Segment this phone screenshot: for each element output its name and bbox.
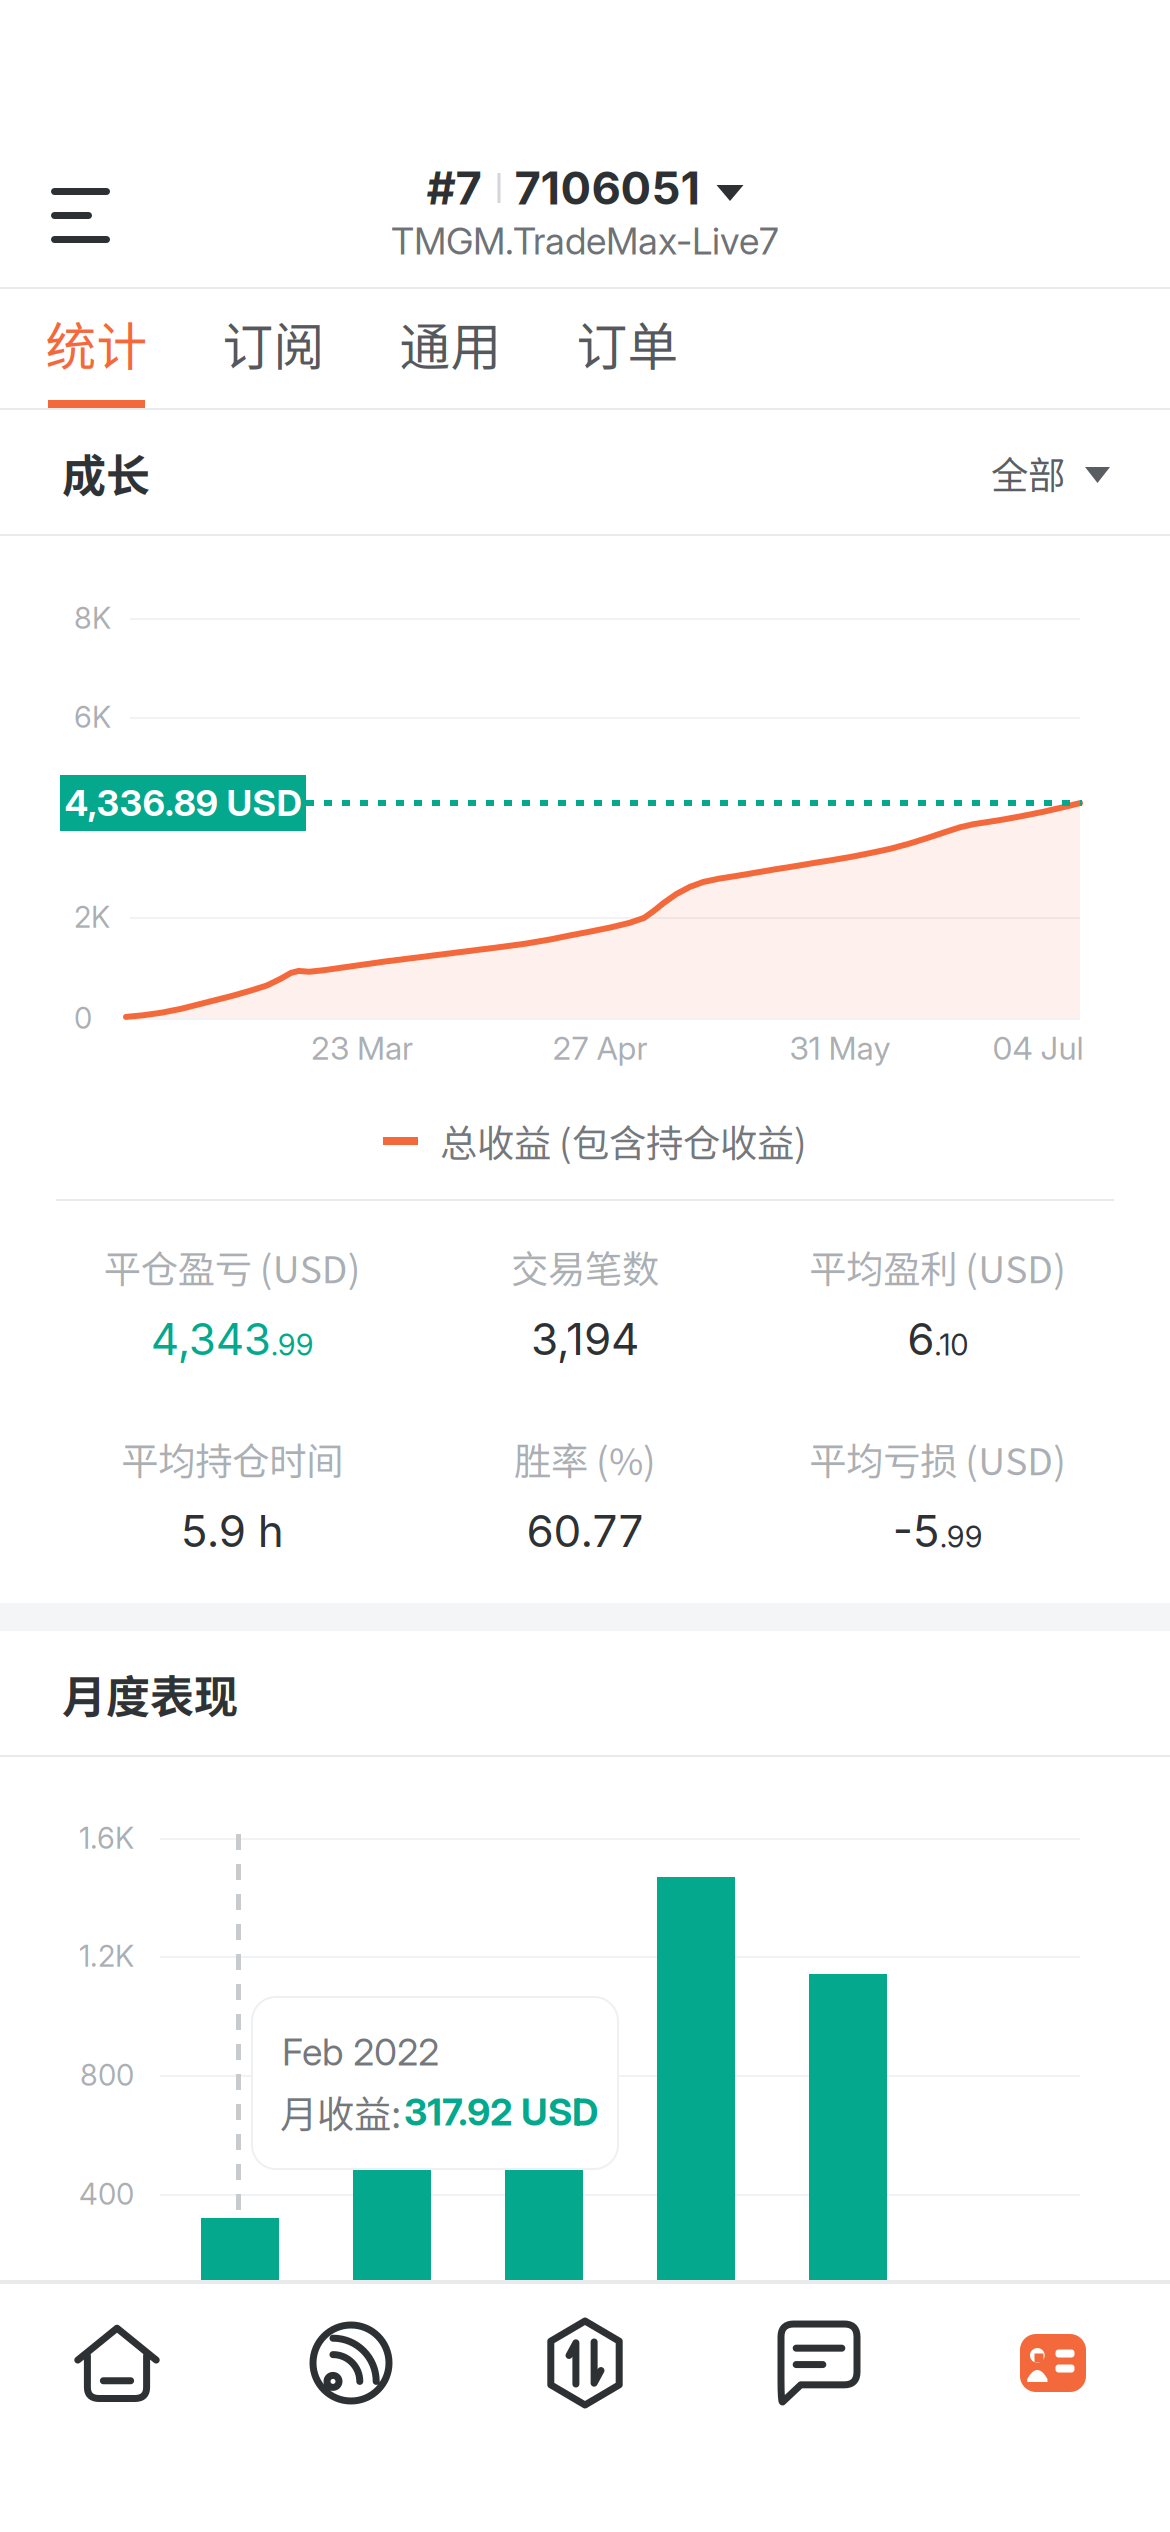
button[interactable]: 通用 xyxy=(362,289,539,410)
staticText: 3,194 xyxy=(531,1312,639,1366)
staticText: 6 xyxy=(907,1312,934,1366)
staticText: 2K xyxy=(74,899,110,935)
staticText: 400 xyxy=(79,2176,134,2212)
staticText: Feb 2022 xyxy=(282,2029,439,2075)
staticText: 4,336.89 USD xyxy=(64,781,301,825)
staticText: 平均盈利 (USD) xyxy=(809,1240,1066,1294)
staticText: 0 xyxy=(74,1000,92,1036)
staticText: 23 Mar xyxy=(311,1029,413,1067)
staticText: 60.77 xyxy=(526,1504,643,1558)
staticText: 胜率 (%) xyxy=(514,1432,656,1486)
staticText: 04 Jul xyxy=(992,1029,1083,1067)
button[interactable]: 统计 xyxy=(8,289,185,410)
staticText: 1.2K xyxy=(79,1938,134,1974)
staticText: TMGM.TradeMax-Live7 xyxy=(391,218,779,264)
staticText: 5.9 h xyxy=(181,1504,284,1558)
staticText: 平均持仓时间 xyxy=(121,1432,343,1486)
button[interactable]: 订阅 xyxy=(185,289,362,410)
staticText: 全部 xyxy=(991,446,1065,500)
staticText: 总收益 (包含持仓收益) xyxy=(440,1114,807,1168)
staticText: 6K xyxy=(74,699,111,735)
staticText: 交易笔数 xyxy=(511,1240,659,1294)
staticText: #7 xyxy=(426,161,481,215)
staticText: 月度表现 xyxy=(62,1662,238,1726)
staticText: .99 xyxy=(940,1519,983,1555)
button[interactable]: Signals xyxy=(234,2282,468,2532)
staticText: 317.92 USD xyxy=(404,2089,598,2135)
staticText: 成长 xyxy=(62,441,150,505)
button[interactable]: Home xyxy=(0,2282,234,2532)
staticText: 通用 xyxy=(399,307,501,380)
staticText: 平仓盈亏 (USD) xyxy=(104,1240,361,1294)
staticText: -5 xyxy=(893,1504,940,1558)
staticText: 31 May xyxy=(789,1029,890,1067)
staticText: 平均亏损 (USD) xyxy=(809,1432,1066,1486)
button[interactable]: Trade xyxy=(468,2282,702,2532)
staticText: .10 xyxy=(934,1327,968,1363)
button[interactable]: 订单 xyxy=(539,289,716,410)
button[interactable]: Profile xyxy=(936,2282,1170,2532)
staticText: 27 Apr xyxy=(552,1029,647,1067)
staticText: 1.6K xyxy=(79,1820,134,1856)
staticText: 订单 xyxy=(576,307,678,380)
staticText: 7106051 xyxy=(514,161,700,215)
staticText: 800 xyxy=(80,2057,134,2093)
staticText: 4,343 xyxy=(151,1312,271,1366)
staticText: 8K xyxy=(74,600,111,636)
button[interactable]: Menu xyxy=(23,160,138,271)
staticText: .99 xyxy=(271,1327,314,1363)
staticText: 月收益: xyxy=(280,2085,401,2139)
staticText: 订阅 xyxy=(222,307,324,380)
button[interactable]: #7 xyxy=(371,160,799,266)
button[interactable]: 全部 xyxy=(991,432,1110,514)
staticText: 统计 xyxy=(45,307,147,380)
button[interactable]: Messages xyxy=(702,2282,936,2532)
